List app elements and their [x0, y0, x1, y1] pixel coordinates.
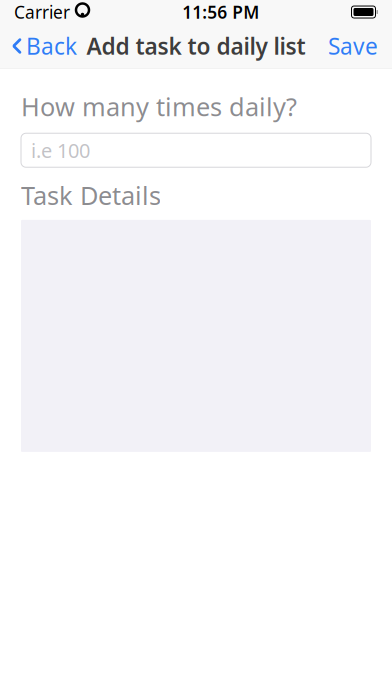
button[interactable]: Save	[316, 24, 392, 68]
staticText: Back	[26, 31, 77, 61]
staticText: Add task to daily list	[86, 31, 305, 61]
staticText: Save	[328, 31, 378, 61]
button[interactable]: Back	[0, 24, 87, 68]
staticText: i.e 100	[31, 137, 90, 164]
staticText: Task Details	[21, 178, 161, 212]
staticText: 11:56 PM	[182, 0, 259, 23]
staticText: Carrier	[14, 0, 70, 23]
staticText: How many times daily?	[21, 90, 297, 123]
